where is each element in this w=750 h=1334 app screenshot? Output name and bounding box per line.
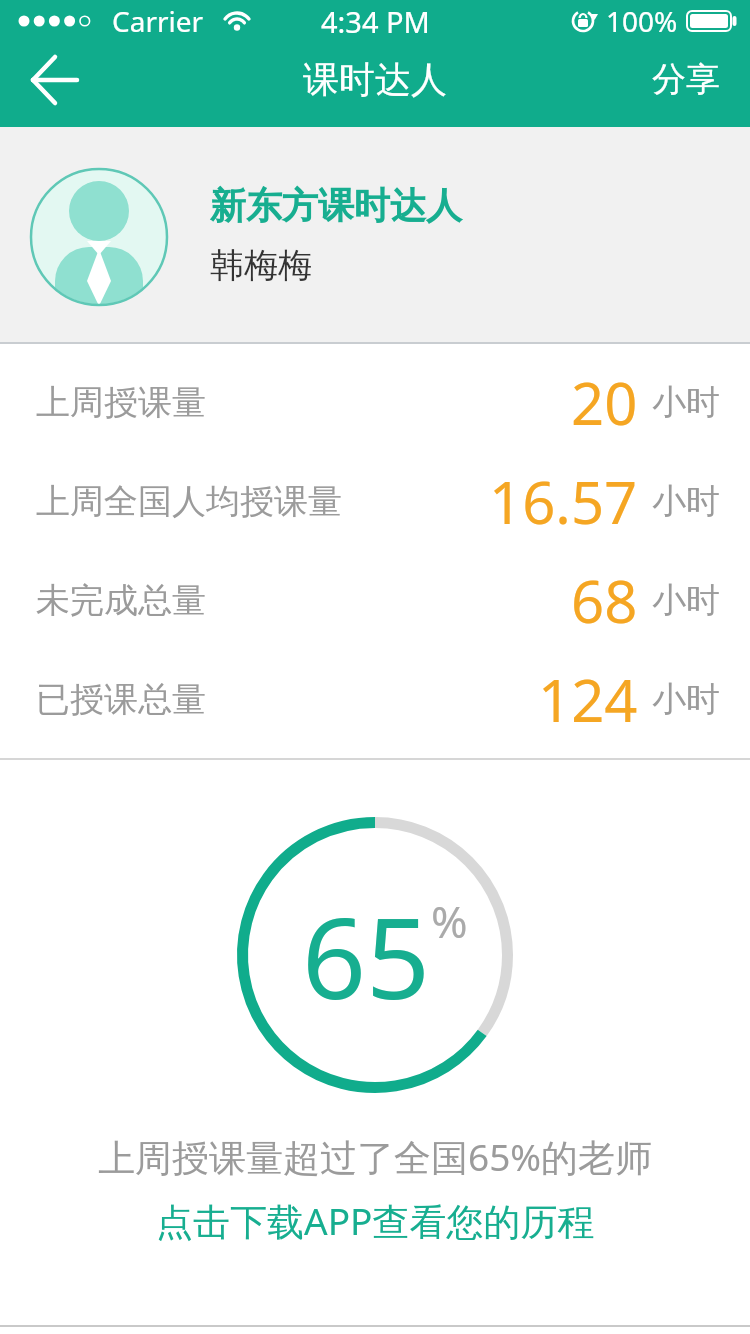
button[interactable]: 分享 xyxy=(652,58,720,101)
staticText: 小时 xyxy=(652,480,720,523)
staticText: 已授课总量 xyxy=(36,678,206,721)
staticText: 小时 xyxy=(652,678,720,721)
staticText: 小时 xyxy=(652,381,720,424)
staticText: 20 xyxy=(571,363,638,442)
staticText: 16.57 xyxy=(489,462,638,541)
staticText: 未完成总量 xyxy=(36,579,206,622)
staticText: 韩梅梅 xyxy=(210,244,312,287)
staticText: 100% xyxy=(606,2,678,40)
staticText: 新东方课时达人 xyxy=(210,183,462,228)
staticText: Carrier xyxy=(112,2,204,40)
staticText: 上周授课量超过了全国65%的老师 xyxy=(98,1131,653,1182)
button[interactable]: 点击下载APP查看您的历程 xyxy=(156,1195,595,1246)
staticText: 上周授课量 xyxy=(36,381,206,424)
button[interactable] xyxy=(20,45,90,115)
staticText: 上周全国人均授课量 xyxy=(36,480,342,523)
staticText: 4:34 PM xyxy=(321,2,430,41)
staticText: 小时 xyxy=(652,579,720,622)
staticText: % xyxy=(431,891,468,951)
staticText: 分享 xyxy=(652,58,720,101)
staticText: 124 xyxy=(538,660,638,739)
staticText: 课时达人 xyxy=(303,57,447,102)
staticText: 68 xyxy=(571,561,638,640)
staticText: 65 xyxy=(302,879,431,1032)
staticText: 点击下载APP查看您的历程 xyxy=(156,1195,595,1246)
